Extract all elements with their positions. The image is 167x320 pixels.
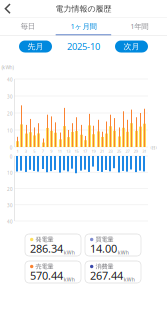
staticText: 27 bbox=[125, 149, 129, 154]
staticText: 2025-10 bbox=[67, 40, 100, 53]
staticText: 1 bbox=[16, 149, 18, 154]
staticText: 次月 bbox=[123, 41, 139, 52]
staticText: kWh bbox=[64, 249, 75, 256]
staticText: 17 bbox=[83, 149, 87, 154]
staticText: 20 bbox=[7, 186, 13, 192]
staticText: 267.44 bbox=[90, 268, 123, 283]
staticText: 5 bbox=[33, 149, 35, 154]
staticText: 15 bbox=[75, 149, 79, 154]
button[interactable]: 先月 bbox=[19, 40, 52, 52]
button[interactable]: 次月 bbox=[115, 40, 148, 52]
staticText: kWh bbox=[64, 276, 75, 283]
staticText: 0 bbox=[10, 145, 13, 151]
button[interactable]: 1年間 bbox=[111, 18, 167, 35]
staticText: 13 bbox=[66, 149, 70, 154]
staticText: 40 bbox=[7, 77, 13, 83]
staticText: 1ヶ月間 bbox=[70, 21, 96, 31]
staticText: 売電量 bbox=[35, 263, 53, 270]
staticText: 9 bbox=[50, 149, 52, 154]
staticText: 21 bbox=[100, 149, 104, 154]
staticText: 3 bbox=[25, 149, 27, 154]
staticText: 31 bbox=[142, 149, 146, 154]
staticText: 25 bbox=[117, 149, 121, 154]
staticText: 23 bbox=[108, 149, 112, 154]
staticText: 14.00 bbox=[90, 241, 117, 256]
staticText: 毎日 bbox=[21, 21, 35, 31]
button[interactable]: Back bbox=[0, 0, 16, 17]
button[interactable]: 1ヶ月間 bbox=[56, 18, 111, 35]
staticText: 電力情報の履歴 bbox=[55, 4, 111, 14]
button[interactable]: 毎日 bbox=[0, 18, 56, 35]
staticText: 30 bbox=[7, 94, 13, 100]
button[interactable]: 売電量 bbox=[25, 261, 81, 283]
staticText: 10 bbox=[7, 128, 13, 134]
button[interactable]: 買電量 bbox=[85, 234, 141, 256]
staticText: (kWh) bbox=[1, 64, 13, 70]
staticText: 11 bbox=[58, 149, 62, 154]
button[interactable]: 消費量 bbox=[85, 261, 141, 283]
staticText: 10 bbox=[7, 170, 13, 176]
staticText: 7 bbox=[42, 149, 44, 154]
staticText: kWh bbox=[124, 276, 135, 283]
staticText: 30 bbox=[7, 202, 13, 208]
staticText: 消費量 bbox=[95, 263, 113, 270]
staticText: 0 bbox=[10, 154, 13, 160]
staticText: 発電量 bbox=[35, 236, 53, 243]
staticText: 286.34 bbox=[30, 241, 63, 256]
staticText: kWh bbox=[118, 249, 129, 256]
staticText: 1年間 bbox=[130, 21, 148, 31]
staticText: (日) bbox=[150, 145, 156, 151]
staticText: 20 bbox=[7, 111, 13, 117]
staticText: 先月 bbox=[27, 41, 43, 52]
staticText: 29 bbox=[134, 149, 138, 154]
staticText: 19 bbox=[91, 149, 95, 154]
staticText: 40 bbox=[7, 219, 13, 225]
staticText: 570.44 bbox=[30, 268, 63, 283]
staticText: 買電量 bbox=[95, 236, 113, 243]
button[interactable]: 発電量 bbox=[25, 234, 81, 256]
